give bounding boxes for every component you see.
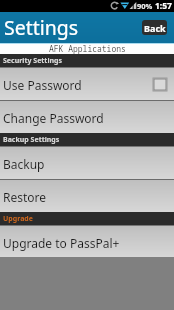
staticText: 1:57 (155, 0, 172, 12)
button[interactable]: Restore (0, 180, 174, 212)
staticText: Security Settings (3, 56, 62, 66)
button[interactable]: Back (142, 20, 167, 35)
staticText: Upgrade (3, 214, 33, 224)
button[interactable]: Upgrade to PassPal+ (0, 226, 174, 257)
staticText: Backup (3, 156, 45, 172)
staticText: Restore (3, 189, 47, 205)
staticText: Settings (4, 14, 79, 41)
staticText: Backup Settings (3, 135, 60, 145)
button[interactable]: Change Password (0, 101, 174, 133)
button[interactable]: Use Password (0, 68, 174, 100)
staticText: Back (144, 22, 166, 34)
staticText: 90% (137, 1, 153, 11)
staticText: AFK Applications (49, 43, 126, 54)
other: Use Password toggle (153, 78, 167, 91)
staticText: Use Password (3, 77, 82, 93)
staticText: Upgrade to PassPal+ (3, 235, 120, 251)
staticText: Change Password (3, 110, 104, 126)
button[interactable]: Backup (0, 147, 174, 179)
